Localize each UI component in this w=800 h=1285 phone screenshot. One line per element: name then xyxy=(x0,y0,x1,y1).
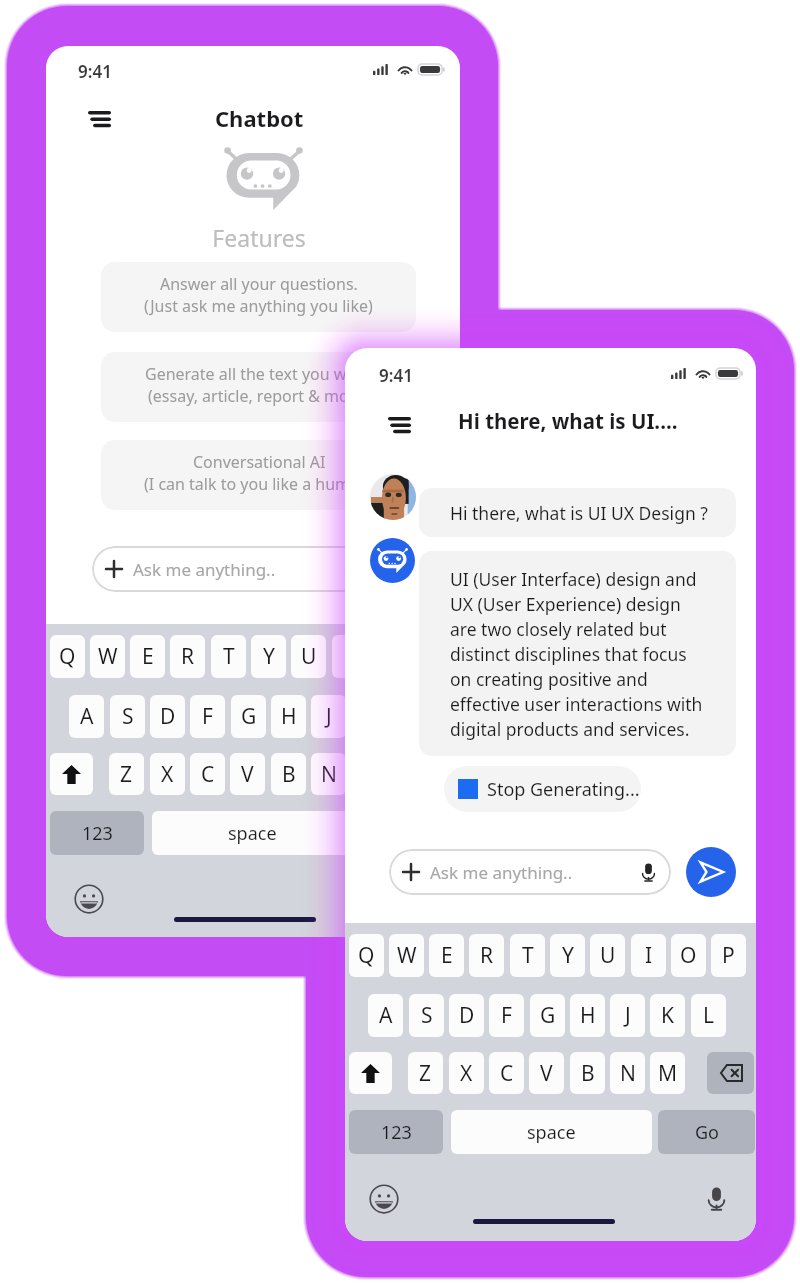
button[interactable]: Stop Generating... xyxy=(444,766,641,812)
button[interactable]: W xyxy=(389,934,424,977)
button[interactable]: Menu xyxy=(379,405,419,445)
button[interactable]: R xyxy=(170,635,205,678)
button[interactable]: T xyxy=(510,934,545,977)
button[interactable]: S xyxy=(409,994,444,1037)
button[interactable]: 123 xyxy=(349,1110,443,1154)
button[interactable]: Go xyxy=(658,1110,755,1154)
button[interactable]: Z xyxy=(109,753,144,795)
button[interactable]: U xyxy=(291,635,326,678)
button[interactable]: D xyxy=(150,695,185,738)
button[interactable]: Voice input xyxy=(700,1183,732,1215)
button[interactable]: J xyxy=(311,695,346,738)
button[interactable]: O xyxy=(671,934,706,977)
button[interactable]: 123 xyxy=(50,811,144,855)
button[interactable]: T xyxy=(211,635,246,678)
button[interactable]: Menu xyxy=(79,99,119,139)
button[interactable]: Hi there, what is UI UX Design ? xyxy=(419,488,736,537)
button[interactable]: Y xyxy=(251,635,286,678)
staticText: Conversational AI xyxy=(193,451,326,473)
button[interactable]: Ask me anything.. xyxy=(389,849,671,895)
staticText: Go xyxy=(695,1120,719,1145)
staticText: F xyxy=(202,702,213,731)
button[interactable]: N xyxy=(311,753,346,795)
button[interactable]: Backspace xyxy=(707,1052,754,1094)
button[interactable]: K xyxy=(650,994,685,1037)
staticText: O xyxy=(680,941,697,970)
button[interactable]: V xyxy=(529,1052,564,1094)
button[interactable]: H xyxy=(570,994,605,1037)
staticText: Stop Generating... xyxy=(487,777,640,802)
button[interactable]: C xyxy=(489,1052,524,1094)
staticText: U xyxy=(301,642,317,671)
button[interactable]: W xyxy=(90,635,125,678)
button[interactable]: U xyxy=(590,934,625,977)
button[interactable]: B xyxy=(271,753,306,795)
button[interactable]: E xyxy=(429,934,464,977)
staticText: K xyxy=(661,1001,674,1030)
button[interactable]: C xyxy=(190,753,225,795)
button[interactable]: D xyxy=(449,994,484,1037)
staticText: Q xyxy=(358,941,375,970)
staticText: 123 xyxy=(381,1120,412,1145)
button[interactable]: V xyxy=(230,753,265,795)
staticText: Z xyxy=(419,1059,432,1088)
button[interactable]: E xyxy=(130,635,165,678)
staticText: Ask me anything.. xyxy=(430,861,573,884)
button[interactable]: Backspace xyxy=(411,753,458,795)
button[interactable]: J xyxy=(610,994,645,1037)
button[interactable]: B xyxy=(570,1052,605,1094)
button[interactable]: Y xyxy=(550,934,585,977)
button[interactable]: Generate all the text you want xyxy=(101,352,416,422)
button[interactable]: G xyxy=(231,695,266,738)
button[interactable]: Ask me anything.. xyxy=(92,546,374,592)
staticText: 123 xyxy=(82,821,113,846)
button[interactable]: M xyxy=(650,1052,685,1094)
staticText: B xyxy=(581,1059,595,1088)
button[interactable]: L xyxy=(691,994,726,1037)
button[interactable]: I xyxy=(631,934,666,977)
button[interactable]: N xyxy=(610,1052,645,1094)
button[interactable]: Q xyxy=(50,635,85,678)
button[interactable]: P xyxy=(711,934,746,977)
button[interactable]: space xyxy=(451,1110,652,1154)
staticText: Generate all the text you want xyxy=(145,363,372,385)
button[interactable]: Shift xyxy=(50,753,93,795)
button[interactable]: A xyxy=(368,994,403,1037)
button[interactable]: I xyxy=(332,635,367,678)
button[interactable]: S xyxy=(110,695,145,738)
button[interactable]: R xyxy=(469,934,504,977)
button[interactable]: X xyxy=(449,1052,484,1094)
button[interactable]: Emoji xyxy=(73,883,105,915)
button[interactable]: A xyxy=(69,695,104,738)
button[interactable]: P xyxy=(412,635,447,678)
staticText: T xyxy=(223,642,235,671)
button[interactable]: G xyxy=(530,994,565,1037)
button[interactable]: Send xyxy=(686,847,736,897)
button[interactable]: Answer all your questions. xyxy=(101,262,416,332)
staticText: N xyxy=(321,760,337,789)
button[interactable]: space xyxy=(152,811,353,855)
button[interactable]: Z xyxy=(408,1052,443,1094)
button[interactable]: L xyxy=(392,695,427,738)
staticText: A xyxy=(379,1001,393,1030)
button[interactable]: Q xyxy=(349,934,384,977)
button[interactable]: UI (User Interface) design and UX (User … xyxy=(419,551,736,756)
button[interactable]: X xyxy=(150,753,185,795)
button[interactable]: F xyxy=(190,695,225,738)
button[interactable]: H xyxy=(271,695,306,738)
staticText: X xyxy=(161,760,174,789)
button[interactable]: Go xyxy=(362,811,459,855)
staticText: C xyxy=(201,760,215,789)
button[interactable]: Emoji xyxy=(368,1183,400,1215)
button[interactable]: Conversational AI xyxy=(101,440,416,510)
button[interactable]: Shift xyxy=(349,1052,392,1094)
button[interactable]: Voice input xyxy=(404,883,436,915)
button[interactable]: F xyxy=(489,994,524,1037)
staticText: V xyxy=(540,1059,553,1088)
